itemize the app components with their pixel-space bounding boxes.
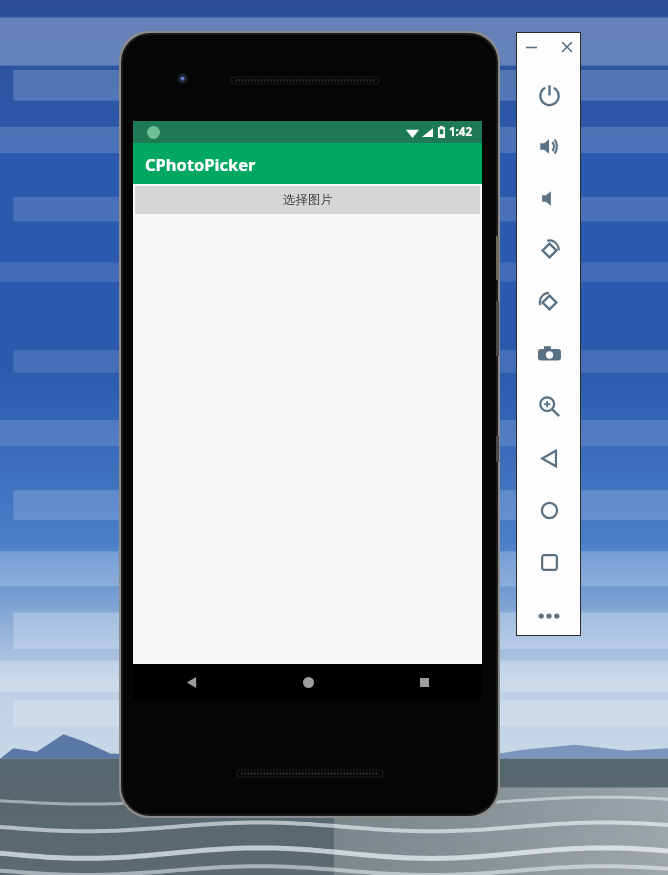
button[interactable]: Rotate right: [517, 276, 581, 328]
button[interactable]: Volume down: [517, 172, 581, 224]
button[interactable]: Close: [554, 34, 580, 60]
button[interactable]: Power: [517, 68, 581, 120]
button[interactable]: Back: [133, 664, 250, 700]
button[interactable]: Rotate left: [517, 224, 581, 276]
button[interactable]: Overview: [517, 536, 581, 588]
staticText: CPhotoPicker: [145, 153, 256, 175]
button[interactable]: Zoom: [517, 380, 581, 432]
button[interactable]: More: [517, 596, 581, 636]
button[interactable]: Screenshot: [517, 328, 581, 380]
button[interactable]: 选择图片: [135, 186, 480, 214]
button[interactable]: Back: [517, 432, 581, 484]
button[interactable]: Home: [517, 484, 581, 536]
staticText: 选择图片: [283, 192, 333, 208]
staticText: 1:42: [449, 124, 472, 140]
button[interactable]: Minimize: [518, 34, 544, 60]
button[interactable]: Home: [250, 664, 366, 700]
button[interactable]: Recents: [366, 664, 482, 700]
button[interactable]: Volume up: [517, 120, 581, 172]
button[interactable]: CPhotoPicker: [133, 143, 482, 184]
